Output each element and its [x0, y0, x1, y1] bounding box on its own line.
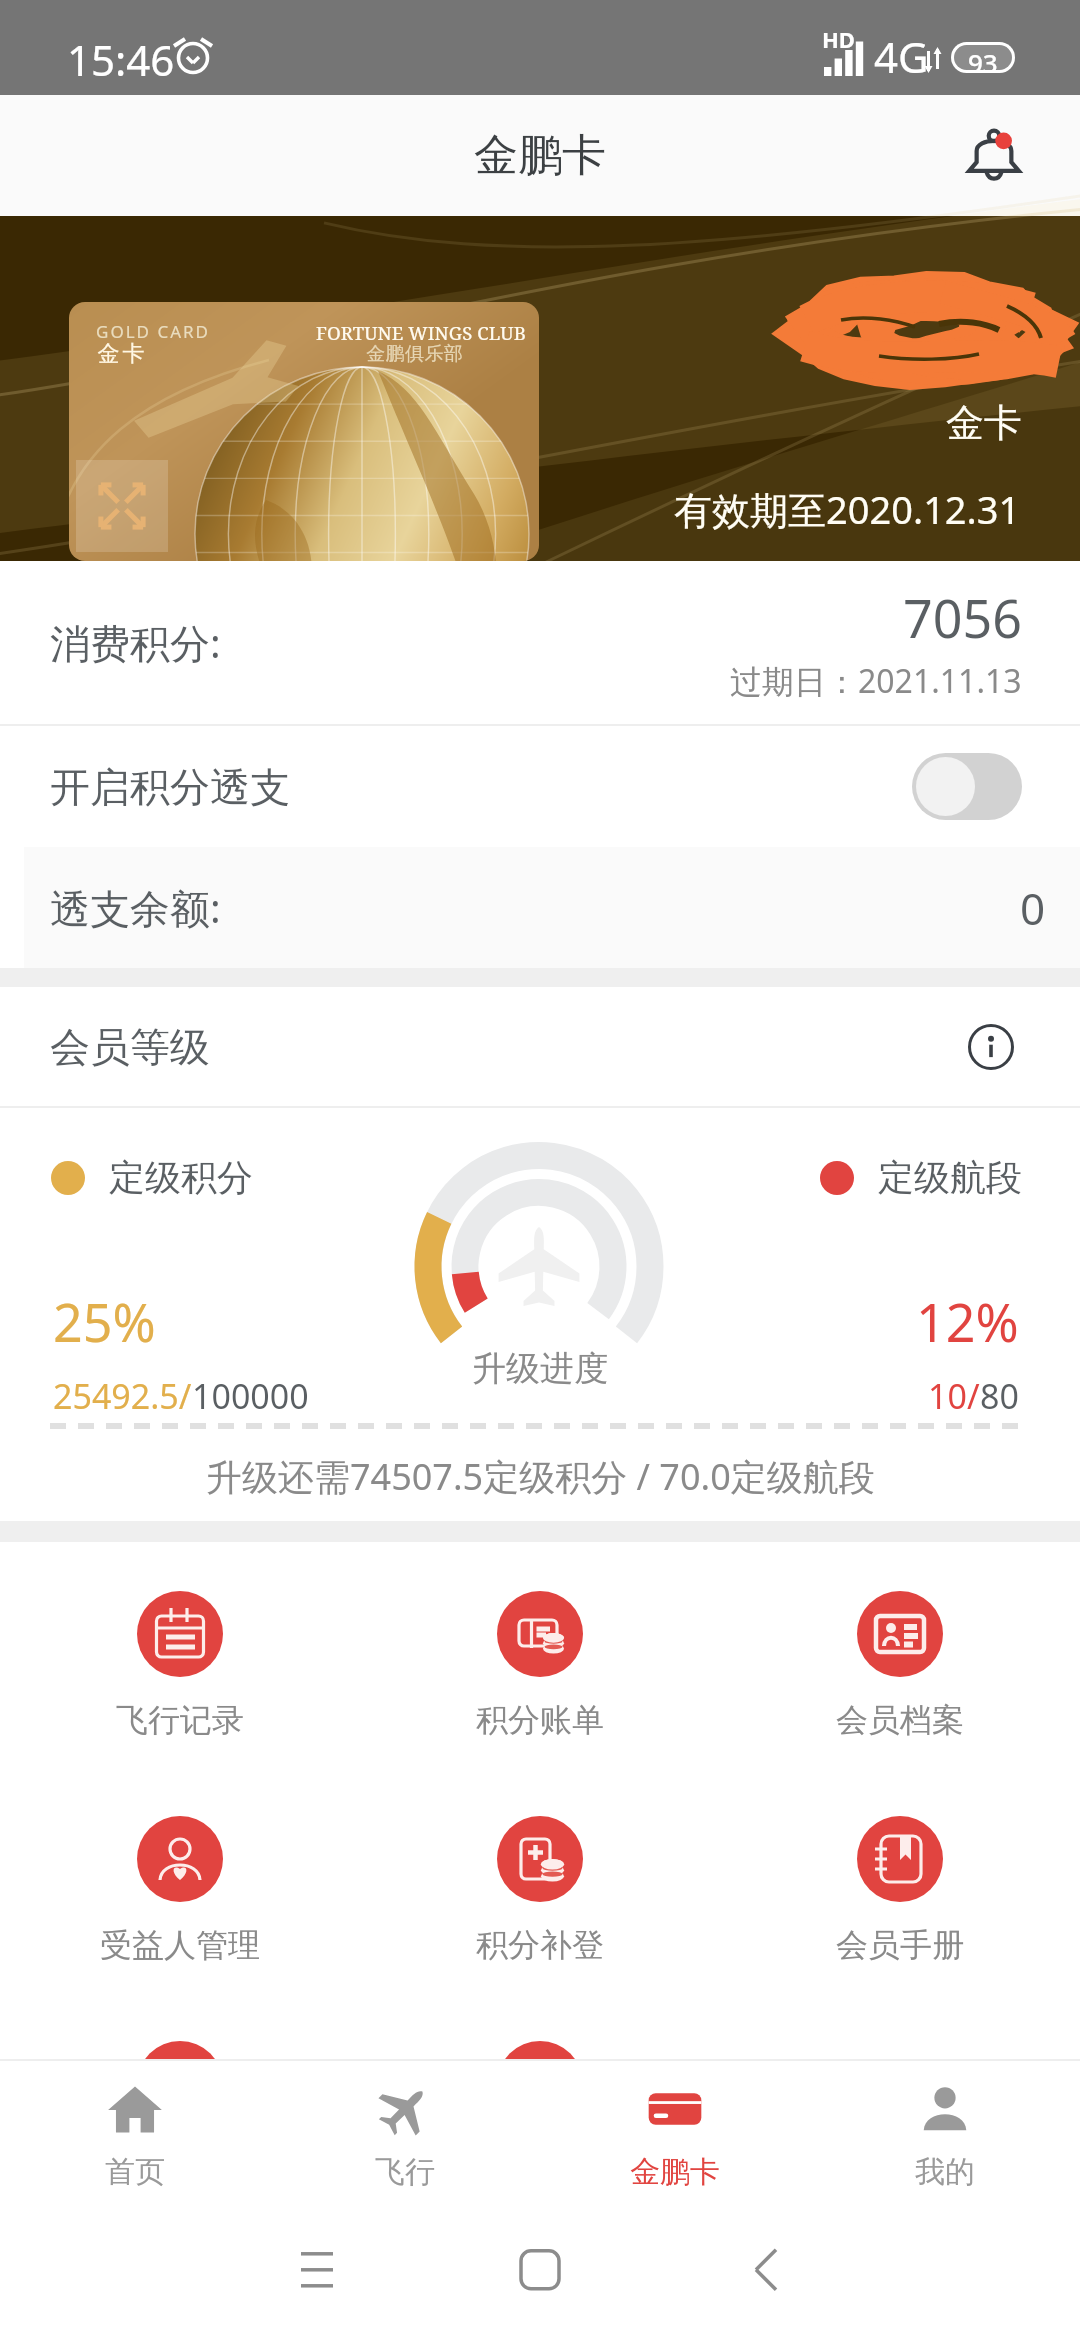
staticText: 积分补登	[476, 1925, 604, 1965]
staticText: 25492.5/	[53, 1373, 192, 1419]
staticText: 积分账单	[476, 1700, 604, 1740]
button[interactable]: 会员档案	[780, 1591, 1020, 1740]
button[interactable]: GOLD CARD	[0, 216, 1080, 561]
staticText: 0	[1020, 878, 1046, 938]
staticText: HD	[822, 24, 855, 54]
other: Info	[968, 1024, 1014, 1070]
staticText: 开启积分透支	[50, 762, 290, 812]
staticText: 会员手册	[836, 1925, 964, 1965]
button[interactable]: 积分转赠	[420, 2041, 660, 2190]
staticText: 升级还需74507.5定级积分 / 70.0定级航段	[206, 1452, 875, 1501]
staticText: GOLD CARD	[96, 320, 210, 343]
staticText: 飞行	[375, 2153, 435, 2191]
staticText: 会员等级	[50, 1022, 210, 1072]
button[interactable]: 飞行	[270, 2061, 540, 2210]
staticText: 首页	[105, 2153, 165, 2191]
staticText: 定级积分	[109, 1155, 253, 1200]
staticText: 里程兑换	[116, 2150, 244, 2190]
button[interactable]: 积分补登	[420, 1816, 660, 1965]
button[interactable]: 受益人管理	[60, 1816, 300, 1965]
staticText: 10/	[928, 1373, 980, 1419]
staticText: 受益人管理	[100, 1925, 260, 1965]
staticText: 金卡	[946, 399, 1022, 447]
staticText: 金卡	[96, 340, 146, 368]
button[interactable]: 里程兑换	[60, 2041, 300, 2190]
staticText: 100000	[192, 1373, 309, 1419]
staticText: 7056	[903, 582, 1022, 653]
staticText: 15:46	[67, 31, 175, 88]
staticText: 有效期至2020.12.31	[674, 483, 1021, 535]
staticText: 消费积分:	[50, 615, 221, 670]
staticText: 过期日：2021.11.13	[730, 659, 1022, 703]
button[interactable]: 我的	[810, 2061, 1080, 2210]
staticText: 金鹏俱乐部	[366, 342, 463, 366]
button[interactable]: 积分账单	[420, 1591, 660, 1740]
button[interactable]: 飞行记录	[60, 1591, 300, 1740]
staticText: 定级航段	[878, 1155, 1022, 1200]
staticText: 80	[980, 1373, 1019, 1419]
staticText: 93	[968, 45, 998, 70]
button[interactable]: 会员等级	[0, 987, 1080, 1106]
button[interactable]: 首页	[0, 2061, 270, 2210]
button[interactable]: 会员手册	[780, 1816, 1020, 1965]
staticText: 我的	[915, 2153, 975, 2191]
button[interactable]: Notifications	[954, 116, 1034, 196]
staticText: 会员档案	[836, 1700, 964, 1740]
staticText: FORTUNE WINGS CLUB	[316, 320, 526, 345]
staticText: 金鹏卡	[630, 2153, 720, 2191]
staticText: 25%	[53, 1286, 156, 1357]
staticText: 透支余额:	[50, 880, 221, 935]
button[interactable]: 开启积分透支	[0, 726, 1080, 847]
staticText: 金鹏卡	[474, 128, 606, 183]
staticText: 飞行记录	[116, 1700, 244, 1740]
button[interactable]: Expand card	[76, 460, 168, 552]
staticText: 12%	[916, 1286, 1019, 1357]
staticText: 升级进度	[472, 1347, 608, 1390]
button[interactable]: 金鹏卡	[540, 2061, 810, 2210]
staticText: 4G	[874, 28, 929, 85]
